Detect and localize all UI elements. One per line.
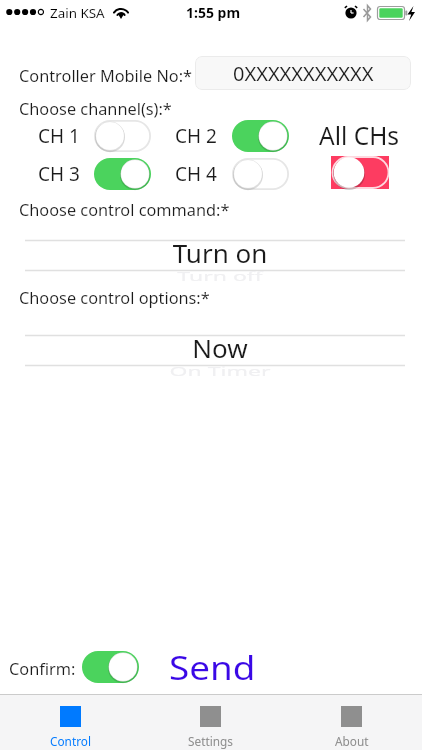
staticText: Control (50, 733, 91, 749)
staticText: CH 2 (175, 123, 217, 149)
staticText: CH 4 (175, 161, 217, 187)
button[interactable]: 0XXXXXXXXXXX (195, 56, 411, 90)
button[interactable]: CH 4 toggle (232, 158, 289, 190)
button[interactable]: Settings (140, 694, 281, 750)
staticText: Choose control options:* (19, 287, 210, 309)
staticText: Confirm: (9, 658, 76, 680)
staticText: 0XXXXXXXXXXX (233, 60, 374, 87)
button[interactable]: CH 3 toggle (94, 158, 151, 190)
staticText: Zain KSA (50, 4, 105, 22)
staticText: Choose control command:* (19, 199, 230, 221)
button[interactable]: Control (0, 694, 140, 750)
button[interactable]: CH 1 toggle (94, 120, 151, 152)
staticText: All CHs (319, 119, 400, 152)
staticText: CH 3 (38, 161, 80, 187)
staticText: Settings (188, 733, 233, 749)
staticText: Send (169, 646, 256, 690)
staticText: Turn off (9, 268, 422, 284)
button[interactable]: Send (169, 646, 256, 690)
staticText: CH 1 (38, 123, 80, 149)
button[interactable]: About (281, 694, 422, 750)
button[interactable]: All channels toggle (331, 156, 389, 189)
staticText: Controller Mobile No:* (19, 65, 193, 87)
button[interactable]: CH 2 toggle (232, 120, 289, 152)
staticText: About (335, 733, 369, 749)
staticText: On Timer (9, 363, 422, 379)
staticText: Choose channel(s):* (19, 98, 172, 120)
button[interactable]: Turn on (9, 235, 422, 270)
button[interactable]: Confirm toggle (82, 651, 139, 683)
button[interactable]: Now (9, 330, 422, 365)
staticText: 1:55 pm (186, 3, 241, 22)
